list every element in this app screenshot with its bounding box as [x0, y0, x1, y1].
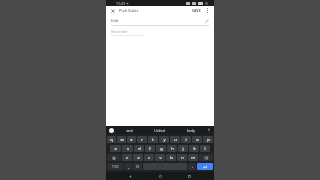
staticText: g	[160, 146, 163, 151]
staticText: x	[137, 155, 140, 160]
button[interactable]: v	[155, 154, 165, 161]
button[interactable]: Voice input	[206, 127, 212, 133]
button[interactable]: Emoji	[133, 163, 142, 170]
staticText: h	[171, 146, 174, 151]
button[interactable]: c	[144, 154, 154, 161]
staticText: o	[196, 137, 199, 142]
button[interactable]: z	[122, 154, 132, 161]
staticText: u	[174, 137, 177, 142]
staticText: l	[204, 146, 206, 151]
staticText: k	[193, 146, 196, 151]
button[interactable]: q	[107, 136, 116, 143]
button[interactable]: s	[122, 145, 133, 152]
staticText: and	[126, 128, 133, 133]
button[interactable]: o	[192, 136, 202, 143]
button[interactable]: k	[189, 145, 199, 152]
staticText: f	[149, 146, 151, 151]
button[interactable]: e	[127, 136, 136, 143]
staticText: Edit	[111, 18, 119, 23]
staticText: ?123	[112, 165, 119, 169]
button[interactable]: .	[188, 163, 196, 170]
staticText: q	[110, 137, 113, 142]
staticText: i	[185, 137, 187, 142]
button[interactable]: and	[114, 126, 144, 134]
staticText: n	[181, 155, 184, 160]
button[interactable]: Reminder	[106, 26, 214, 36]
button[interactable]: Shift	[107, 154, 121, 161]
button[interactable]: r	[137, 136, 147, 143]
button[interactable]: Backspace	[199, 154, 213, 161]
button[interactable]: United	[144, 126, 175, 134]
button[interactable]: a	[110, 145, 121, 152]
button[interactable]: g	[156, 145, 166, 152]
button[interactable]: Close	[109, 7, 117, 15]
staticText: b	[170, 155, 173, 160]
staticText: a	[114, 146, 117, 151]
staticText: d	[138, 146, 141, 151]
staticText: .	[192, 164, 193, 169]
staticText: t	[152, 137, 154, 142]
button[interactable]: Back	[126, 172, 135, 180]
button[interactable]: w	[117, 136, 126, 143]
button[interactable]: n	[177, 154, 187, 161]
button[interactable]: f	[145, 145, 155, 152]
staticText: body	[187, 128, 195, 133]
staticText: m	[191, 155, 195, 160]
button[interactable]: x	[133, 154, 143, 161]
button[interactable]: Google	[109, 128, 114, 133]
staticText: j	[182, 146, 184, 151]
staticText: z	[126, 155, 128, 160]
button[interactable]: Enter	[197, 163, 213, 170]
button[interactable]: d	[134, 145, 144, 152]
button[interactable]: l	[200, 145, 210, 152]
button[interactable]: More options	[204, 7, 211, 14]
staticText: v	[159, 155, 162, 160]
staticText: p	[207, 137, 210, 142]
staticText: w	[120, 137, 124, 142]
button[interactable]: Home	[156, 172, 165, 180]
button[interactable]: i	[181, 136, 191, 143]
staticText: Reminder	[111, 29, 128, 34]
staticText: SAVE	[192, 8, 201, 13]
staticText: s	[127, 146, 129, 151]
staticText: e	[130, 137, 133, 142]
staticText: Pick Euler	[119, 8, 139, 14]
button[interactable]: p	[203, 136, 213, 143]
button[interactable]: u	[170, 136, 180, 143]
button[interactable]: m	[188, 154, 198, 161]
button[interactable]: t	[148, 136, 158, 143]
button[interactable]: j	[178, 145, 188, 152]
button[interactable]: body	[175, 126, 206, 134]
staticText: 11:23	[116, 1, 125, 6]
staticText: ,	[128, 164, 129, 169]
staticText: c	[148, 155, 150, 160]
button[interactable]: Recent apps	[185, 172, 194, 180]
staticText: United	[154, 128, 165, 133]
button[interactable]: y	[159, 136, 169, 143]
button[interactable]: ,	[124, 163, 132, 170]
button[interactable]: ?123	[107, 163, 123, 170]
staticText: y	[163, 137, 166, 142]
button[interactable]: Edit	[106, 15, 214, 26]
button[interactable]: SAVE	[190, 7, 203, 14]
staticText: r	[141, 137, 143, 142]
button[interactable]: h	[167, 145, 177, 152]
button[interactable]: b	[166, 154, 176, 161]
